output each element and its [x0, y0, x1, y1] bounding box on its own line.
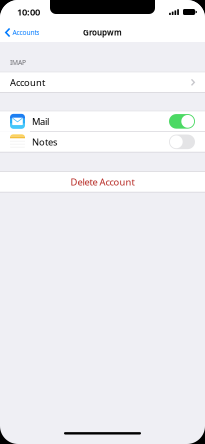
- button[interactable]: Accounts: [0, 24, 45, 41]
- button[interactable]: Account: [0, 72, 205, 92]
- staticText: 10:00: [17, 6, 40, 18]
- button[interactable]: Mail: [169, 114, 195, 129]
- staticText: IMAP: [10, 58, 26, 67]
- staticText: Mail: [32, 115, 49, 128]
- button[interactable]: Notes: [169, 135, 195, 149]
- staticText: Notes: [32, 136, 57, 148]
- staticText: Groupwm: [83, 27, 122, 38]
- staticText: Accounts: [12, 28, 39, 37]
- staticText: Delete Account: [70, 176, 134, 188]
- staticText: Account: [10, 76, 45, 89]
- button[interactable]: Delete Account: [0, 172, 205, 192]
